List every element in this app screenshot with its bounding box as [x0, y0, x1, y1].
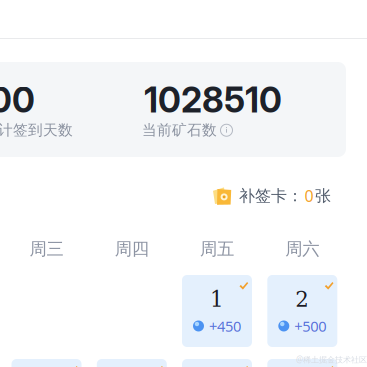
button[interactable]: 11	[267, 359, 337, 367]
staticText: 周五	[200, 238, 234, 260]
button[interactable]: 2	[267, 275, 337, 347]
button[interactable]: 1	[182, 275, 252, 347]
button[interactable]: 8	[11, 359, 81, 367]
staticText: 1028510	[144, 79, 282, 121]
staticText: 累计签到天数	[0, 121, 73, 139]
staticText: 2	[295, 287, 309, 312]
staticText: 00	[0, 79, 35, 121]
staticText: +500	[294, 316, 326, 336]
staticText: 0	[304, 185, 313, 207]
staticText: +450	[209, 316, 241, 336]
staticText: 张	[315, 186, 331, 206]
staticText: 1	[210, 287, 224, 312]
staticText: 周四	[115, 238, 149, 260]
button[interactable]: 10	[182, 359, 252, 367]
staticText: 当前矿石数	[142, 121, 217, 139]
staticText: @稀土掘金技术社区	[296, 354, 367, 365]
button[interactable]: 9	[97, 359, 167, 367]
staticText: 周六	[285, 238, 319, 260]
staticText: 周三	[29, 238, 63, 260]
button[interactable]: 补签卡：	[212, 185, 331, 207]
staticText: 补签卡：	[239, 186, 303, 206]
